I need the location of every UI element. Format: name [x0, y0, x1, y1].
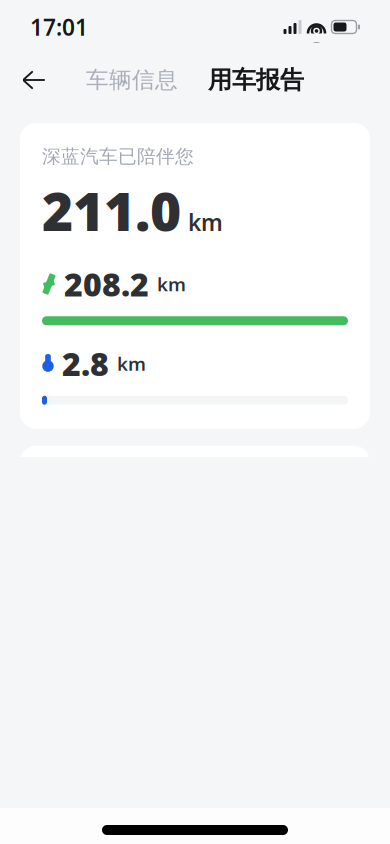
staticText: 2.8	[62, 342, 109, 385]
staticText: 208.2	[64, 263, 149, 305]
staticText: 用车报告	[208, 65, 304, 95]
button[interactable]: 车辆信息	[86, 60, 178, 100]
staticText: 暂无数据	[149, 808, 241, 836]
staticText: km	[117, 351, 146, 376]
button[interactable]: 用车报告	[208, 59, 304, 101]
button[interactable]: Back	[11, 57, 57, 103]
staticText: 211.0	[42, 175, 181, 246]
staticText: km	[188, 207, 223, 237]
staticText: 深蓝汽车已陪伴您	[42, 145, 194, 168]
staticText: km	[157, 272, 186, 296]
staticText: 车辆信息	[86, 66, 178, 94]
staticText: 17:01	[30, 12, 88, 42]
